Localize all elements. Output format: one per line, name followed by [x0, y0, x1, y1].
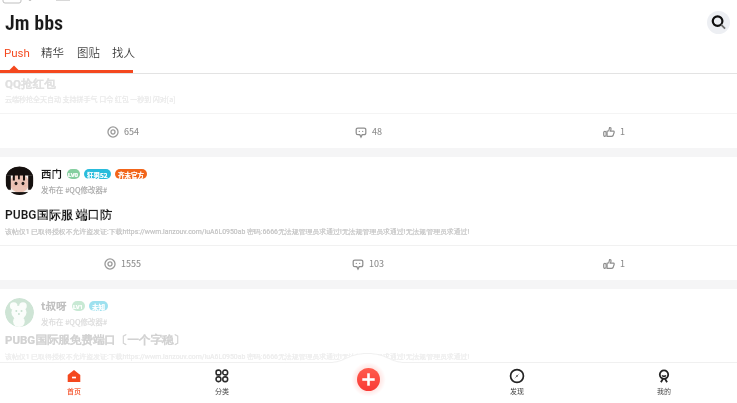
staticText: 西门 — [41, 166, 62, 181]
staticText: 发现 — [510, 386, 524, 396]
staticText: 齐末官方 — [118, 170, 144, 179]
staticText: LV0 — [68, 171, 79, 178]
staticText: 该帖仅1 已取得授权不允许盗发证:下载https://wwm.lanzouv.c… — [5, 227, 737, 236]
button[interactable]: 1 — [603, 257, 625, 270]
staticText: 狂男52 — [87, 170, 108, 179]
staticText: PUBG国际服 端口防 — [5, 207, 112, 222]
button[interactable]: 48 — [355, 125, 382, 138]
staticText: PUBG国际服免费端口〔一个字稳〕 — [5, 333, 185, 347]
button[interactable]: 发现 — [443, 362, 590, 403]
button[interactable]: 1 — [603, 125, 625, 138]
button[interactable]: 西门 — [0, 157, 737, 280]
staticText: 图贴 — [77, 44, 100, 61]
button[interactable]: 我的 — [590, 362, 737, 403]
staticText: LV1 — [73, 303, 84, 310]
button[interactable]: t叔呀 — [0, 289, 737, 361]
staticText: 发布在 #QQ修改器# — [41, 184, 108, 195]
staticText: 该帖仅1 已取得授权不允许盗发证:下载https://wwm.lanzouv.c… — [5, 352, 737, 361]
staticText: 未知 — [92, 302, 105, 311]
button[interactable]: QQ抢红包 — [0, 74, 737, 148]
button[interactable]: 图贴 — [77, 44, 100, 61]
staticText: 48 — [372, 125, 382, 138]
staticText: 654 — [124, 125, 139, 138]
button[interactable]: 精华 — [41, 44, 64, 61]
button[interactable]: 654 — [107, 125, 139, 138]
staticText: QQ抢红包 — [5, 77, 56, 91]
staticText: 1 — [620, 257, 625, 270]
staticText: 103 — [369, 257, 384, 270]
staticText: Jm bbs — [5, 11, 64, 34]
button[interactable]: t叔呀 — [5, 298, 737, 327]
staticText: Push — [4, 46, 30, 59]
button[interactable]: New post — [357, 368, 380, 391]
staticText: 1 — [620, 125, 625, 138]
button[interactable]: 分类 — [148, 362, 296, 403]
staticText: 分类 — [215, 386, 229, 396]
button[interactable]: Search — [707, 11, 730, 34]
button[interactable]: Push — [4, 46, 30, 59]
staticText: 1555 — [121, 257, 141, 270]
staticText: 首页 — [67, 386, 81, 396]
button[interactable]: 找人 — [112, 44, 135, 61]
staticText: 找人 — [112, 44, 135, 61]
button[interactable]: 首页 — [0, 362, 148, 403]
staticText: 发布在 #QQ修改器# — [41, 316, 108, 327]
button[interactable]: 1555 — [104, 257, 141, 270]
button[interactable]: 103 — [352, 257, 384, 270]
staticText: 我的 — [657, 386, 671, 396]
staticText: 云端秒抢全天自动 支持拼手气 口令 红包 一秒到 闪对[a] — [5, 94, 176, 104]
button[interactable]: 西门 — [5, 166, 737, 195]
staticText: t叔呀 — [41, 298, 67, 313]
staticText: 精华 — [41, 44, 64, 61]
